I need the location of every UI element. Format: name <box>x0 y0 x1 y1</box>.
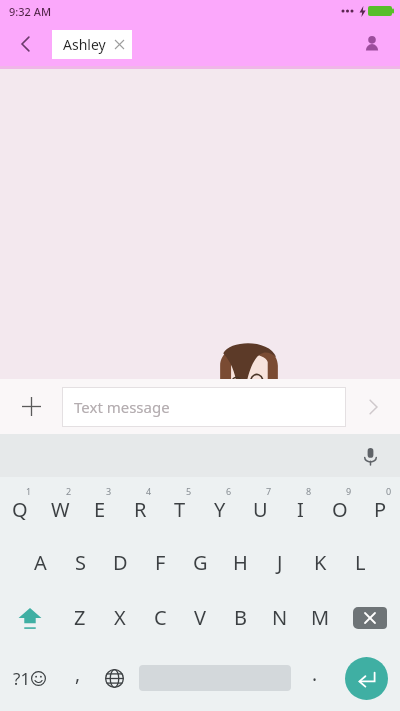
button[interactable]: Attach <box>0 379 62 434</box>
button[interactable]: Voice input <box>350 436 390 476</box>
button[interactable]: D <box>100 535 140 590</box>
staticText: 2 <box>66 485 72 497</box>
button[interactable]: 8 <box>280 477 320 535</box>
staticText: E <box>94 496 106 523</box>
button[interactable]: J <box>260 535 300 590</box>
staticText: W <box>51 496 70 523</box>
button[interactable]: 0 <box>360 477 400 535</box>
staticText: A <box>34 549 47 576</box>
button[interactable]: L <box>340 535 380 590</box>
staticText: H <box>233 549 248 576</box>
staticText: I <box>297 496 304 523</box>
staticText: J <box>277 549 283 576</box>
staticText: Y <box>214 496 226 523</box>
staticText: . <box>312 661 318 687</box>
button[interactable]: G <box>180 535 220 590</box>
button[interactable]: 1 <box>0 477 40 535</box>
button[interactable]: A <box>20 535 60 590</box>
staticText: S <box>75 549 86 576</box>
staticText: Z <box>74 604 86 631</box>
button[interactable]: 9 <box>320 477 360 535</box>
button[interactable]: C <box>140 590 180 645</box>
staticText: F <box>155 549 166 576</box>
staticText: 4 <box>146 485 152 497</box>
staticText: N <box>272 604 288 631</box>
staticText: T <box>174 496 186 523</box>
button[interactable]: F <box>140 535 180 590</box>
staticText: 0 <box>386 485 392 497</box>
staticText: , <box>75 661 81 687</box>
staticText: G <box>193 549 208 576</box>
button[interactable]: Z <box>60 590 100 645</box>
button[interactable]: Enter <box>333 645 400 711</box>
button[interactable]: . <box>296 645 333 711</box>
staticText: R <box>134 496 147 523</box>
button[interactable]: K <box>300 535 340 590</box>
button[interactable]: Space <box>133 645 296 711</box>
button[interactable]: , <box>59 645 96 711</box>
button[interactable]: S <box>60 535 100 590</box>
button[interactable]: 2 <box>40 477 80 535</box>
staticText: Q <box>12 496 28 523</box>
staticText: Ashley <box>63 35 106 54</box>
staticText: 6 <box>226 485 232 497</box>
staticText: X <box>114 604 126 631</box>
staticText: 9:32 AM <box>9 4 52 19</box>
staticText: 1 <box>26 485 32 497</box>
staticText: M <box>311 604 330 631</box>
staticText: O <box>332 496 348 523</box>
staticText: C <box>154 604 167 631</box>
staticText: 7 <box>266 485 272 497</box>
staticText: Text message <box>74 397 170 417</box>
button[interactable]: X <box>100 590 140 645</box>
button[interactable]: H <box>220 535 260 590</box>
button[interactable]: Text message <box>62 387 346 427</box>
staticText: B <box>234 604 247 631</box>
button[interactable]: 6 <box>200 477 240 535</box>
staticText: L <box>355 549 366 576</box>
button[interactable]: Change language <box>96 645 133 711</box>
button[interactable]: Contact details <box>352 24 392 64</box>
button[interactable]: 3 <box>80 477 120 535</box>
button[interactable]: N <box>260 590 300 645</box>
staticText: V <box>194 604 206 631</box>
button[interactable]: B <box>220 590 260 645</box>
staticText: 5 <box>186 485 192 497</box>
button[interactable]: Send <box>346 379 400 434</box>
button[interactable]: Ashley <box>52 30 132 59</box>
staticText: 9 <box>346 485 352 497</box>
button[interactable]: M <box>300 590 340 645</box>
button[interactable]: Backspace <box>340 590 400 645</box>
button[interactable]: ?1 <box>0 645 59 711</box>
button[interactable]: 5 <box>160 477 200 535</box>
staticText: P <box>374 496 387 523</box>
button[interactable]: V <box>180 590 220 645</box>
staticText: K <box>314 549 327 576</box>
button[interactable]: Shift <box>0 590 60 645</box>
staticText: 8 <box>306 485 312 497</box>
staticText: ?1 <box>13 667 31 690</box>
button[interactable]: 7 <box>240 477 280 535</box>
staticText: D <box>113 549 128 576</box>
staticText: 3 <box>106 485 112 497</box>
button[interactable]: 4 <box>120 477 160 535</box>
staticText: U <box>253 496 268 523</box>
button[interactable]: Back <box>6 24 46 64</box>
